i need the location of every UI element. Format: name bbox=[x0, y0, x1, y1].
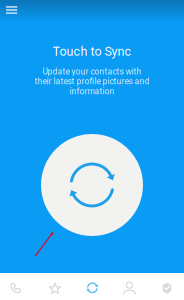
staticText: Touch to Sync bbox=[52, 44, 131, 59]
button[interactable]: Contacts bbox=[111, 273, 148, 300]
button[interactable]: Favorites bbox=[36, 273, 73, 300]
button[interactable]: Menu bbox=[2, 0, 22, 20]
staticText: information bbox=[69, 86, 114, 96]
staticText: their latest profile pictures and bbox=[34, 76, 149, 86]
button[interactable]: Sync now bbox=[41, 134, 143, 236]
staticText: Update your contacts with bbox=[42, 67, 141, 76]
button[interactable]: Calls bbox=[0, 273, 34, 300]
button[interactable]: Protection bbox=[149, 273, 184, 300]
button[interactable]: Sync bbox=[74, 273, 111, 300]
